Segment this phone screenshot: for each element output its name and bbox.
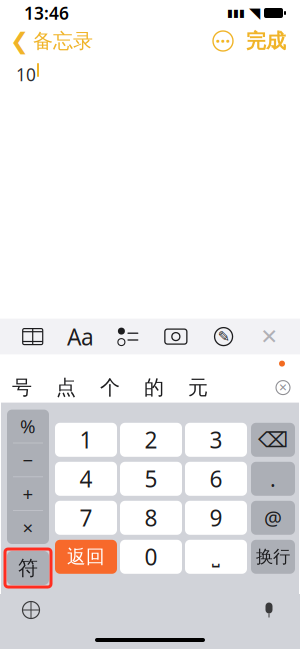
- button[interactable]: 2: [120, 423, 182, 457]
- staticText: ✕: [260, 324, 278, 349]
- button[interactable]: −: [7, 443, 49, 476]
- staticText: ◥: [249, 5, 260, 21]
- staticText: 8: [144, 503, 157, 533]
- staticText: 的: [144, 375, 164, 400]
- button[interactable]: 表格: [18, 323, 48, 351]
- button[interactable]: ❮: [0, 24, 93, 58]
- staticText: 返回: [67, 545, 105, 568]
- button[interactable]: 8: [120, 501, 182, 535]
- button[interactable]: 收起候选: [266, 373, 300, 403]
- staticText: 2: [144, 425, 157, 455]
- button[interactable]: 9: [185, 501, 247, 535]
- staticText: 4: [79, 464, 92, 494]
- button[interactable]: 贴纸: [272, 355, 292, 373]
- staticText: 完成: [246, 29, 286, 53]
- staticText: ···: [215, 29, 230, 52]
- button[interactable]: 7: [55, 501, 117, 535]
- button[interactable]: 的: [132, 373, 176, 403]
- button[interactable]: 格式: [65, 323, 95, 351]
- button[interactable]: %: [7, 410, 49, 443]
- staticText: %: [20, 414, 36, 438]
- button[interactable]: 0: [120, 540, 182, 574]
- staticText: 个: [100, 375, 120, 400]
- staticText: ⌫: [258, 428, 288, 452]
- button[interactable]: 标记: [209, 323, 239, 351]
- button[interactable]: 1: [55, 423, 117, 457]
- staticText: ×: [22, 515, 33, 540]
- button[interactable]: 清单: [113, 323, 143, 351]
- staticText: 符: [18, 556, 38, 580]
- button[interactable]: 相机: [161, 323, 191, 351]
- button[interactable]: 6: [185, 462, 247, 496]
- button[interactable]: 空格: [185, 540, 247, 574]
- button[interactable]: 返回: [55, 540, 117, 574]
- button[interactable]: 关闭: [256, 323, 282, 351]
- staticText: 3: [209, 425, 222, 455]
- staticText: 备忘录: [33, 29, 93, 53]
- staticText: 1: [79, 425, 92, 455]
- staticText: ▮▮▮: [227, 7, 245, 19]
- button[interactable]: 符: [7, 551, 49, 585]
- staticText: 7: [79, 503, 92, 533]
- staticText: ✎: [218, 328, 230, 345]
- staticText: 6: [209, 464, 222, 494]
- button[interactable]: 换行: [251, 540, 295, 574]
- staticText: −: [22, 447, 33, 472]
- button[interactable]: 号: [0, 373, 44, 403]
- staticText: 13:46: [24, 1, 69, 24]
- staticText: 元: [188, 375, 208, 400]
- button[interactable]: 切换键盘: [14, 596, 48, 624]
- staticText: ❮: [10, 28, 29, 54]
- staticText: 10: [16, 63, 36, 86]
- staticText: 0: [144, 542, 157, 572]
- staticText: +: [22, 481, 33, 506]
- staticText: ⎵: [212, 547, 220, 566]
- button[interactable]: 5: [120, 462, 182, 496]
- button[interactable]: 完成: [233, 25, 300, 57]
- button[interactable]: 元: [176, 373, 220, 403]
- staticText: 号: [12, 375, 32, 400]
- button[interactable]: 个: [88, 373, 132, 403]
- staticText: 换行: [256, 546, 290, 567]
- button[interactable]: 语音输入: [252, 596, 286, 624]
- button[interactable]: 删除: [251, 423, 295, 457]
- staticText: @: [264, 504, 282, 531]
- staticText: 5: [144, 464, 157, 494]
- button[interactable]: +: [7, 477, 49, 510]
- button[interactable]: @: [251, 501, 295, 535]
- button[interactable]: ×: [7, 511, 49, 544]
- button[interactable]: .: [251, 462, 295, 496]
- staticText: 9: [209, 503, 222, 533]
- button[interactable]: 更多: [213, 31, 233, 51]
- staticText: .: [270, 465, 276, 493]
- button[interactable]: 4: [55, 462, 117, 496]
- staticText: ✕: [278, 381, 287, 394]
- staticText: 点: [56, 375, 76, 400]
- staticText: Aa: [67, 321, 94, 352]
- button[interactable]: 点: [44, 373, 88, 403]
- button[interactable]: 3: [185, 423, 247, 457]
